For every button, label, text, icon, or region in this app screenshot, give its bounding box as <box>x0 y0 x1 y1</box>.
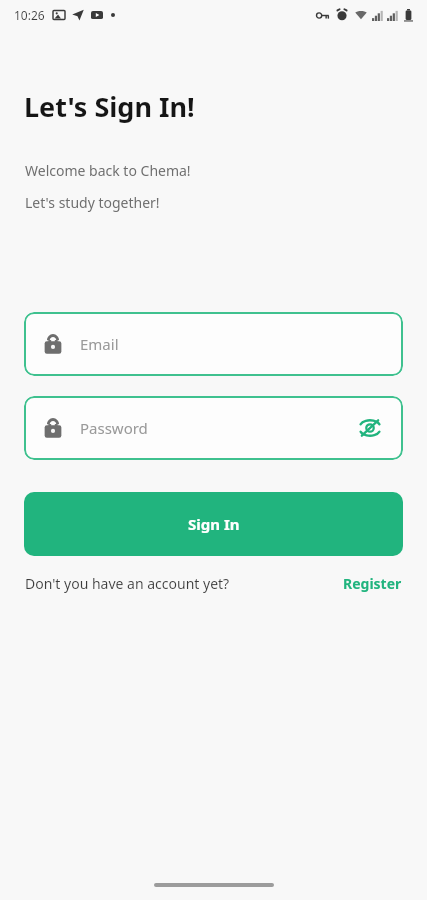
button[interactable]: Password <box>24 396 403 460</box>
staticText: Password <box>80 418 148 438</box>
staticText: Email <box>80 334 119 354</box>
button[interactable]: Register <box>343 574 402 593</box>
staticText: Let's study together! <box>25 193 160 212</box>
button[interactable]: Email <box>24 312 403 376</box>
staticText: Welcome back to Chema! <box>25 161 191 180</box>
staticText: Let's Sign In! <box>24 88 195 125</box>
staticText: Register <box>343 574 402 593</box>
button[interactable]: Toggle password visibility <box>355 413 385 443</box>
button[interactable]: Sign In <box>24 492 403 556</box>
staticText: 10:26 <box>14 7 45 23</box>
staticText: Sign In <box>188 514 240 534</box>
staticText: Don't you have an account yet? <box>25 574 230 593</box>
